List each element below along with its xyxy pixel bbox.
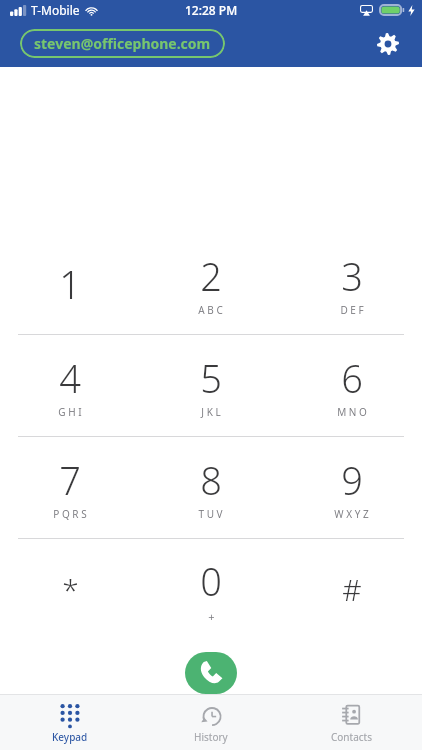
staticText: 3 <box>341 250 363 302</box>
staticText: 2 <box>200 250 222 302</box>
button[interactable]: 3 <box>281 233 422 334</box>
staticText: 5 <box>200 352 222 404</box>
staticText: J K L <box>201 405 221 419</box>
button[interactable]: steven@officephone.com <box>20 29 225 58</box>
button[interactable]: 0 <box>140 539 281 640</box>
staticText: 0 <box>200 555 222 607</box>
staticText: D E F <box>340 303 364 317</box>
button[interactable]: 1 <box>0 233 140 334</box>
button[interactable]: 6 <box>281 335 422 436</box>
staticText: G H I <box>58 405 82 419</box>
staticText: M N O <box>337 405 367 419</box>
staticText: 1 <box>59 258 81 310</box>
button[interactable]: * <box>0 539 140 640</box>
staticText: 8 <box>200 454 222 506</box>
button[interactable]: Call <box>185 652 237 694</box>
staticText: T U V <box>198 507 223 521</box>
staticText: History <box>194 730 228 744</box>
button[interactable]: 4 <box>0 335 140 436</box>
staticText: steven@officephone.com <box>34 34 211 53</box>
button[interactable]: History <box>140 695 281 750</box>
staticText: 4 <box>59 352 81 404</box>
staticText: A B C <box>198 303 223 317</box>
button[interactable]: Keypad <box>0 695 140 750</box>
staticText: 12:28 PM <box>185 2 238 18</box>
staticText: W X Y Z <box>334 507 369 521</box>
staticText: 9 <box>341 454 363 506</box>
staticText: * <box>62 569 79 610</box>
staticText: + <box>208 609 215 624</box>
staticText: Keypad <box>52 730 88 744</box>
button[interactable]: 5 <box>140 335 281 436</box>
staticText: P Q R S <box>53 507 87 521</box>
button[interactable]: 7 <box>0 437 140 538</box>
button[interactable]: Settings <box>368 24 408 64</box>
button[interactable]: 8 <box>140 437 281 538</box>
staticText: 6 <box>341 352 363 404</box>
button[interactable]: Contacts <box>281 695 422 750</box>
staticText: Contacts <box>331 730 372 744</box>
staticText: # <box>342 569 362 610</box>
staticText: 7 <box>59 454 81 506</box>
button[interactable]: # <box>281 539 422 640</box>
staticText: T-Mobile <box>31 2 80 18</box>
button[interactable]: 9 <box>281 437 422 538</box>
button[interactable]: 2 <box>140 233 281 334</box>
